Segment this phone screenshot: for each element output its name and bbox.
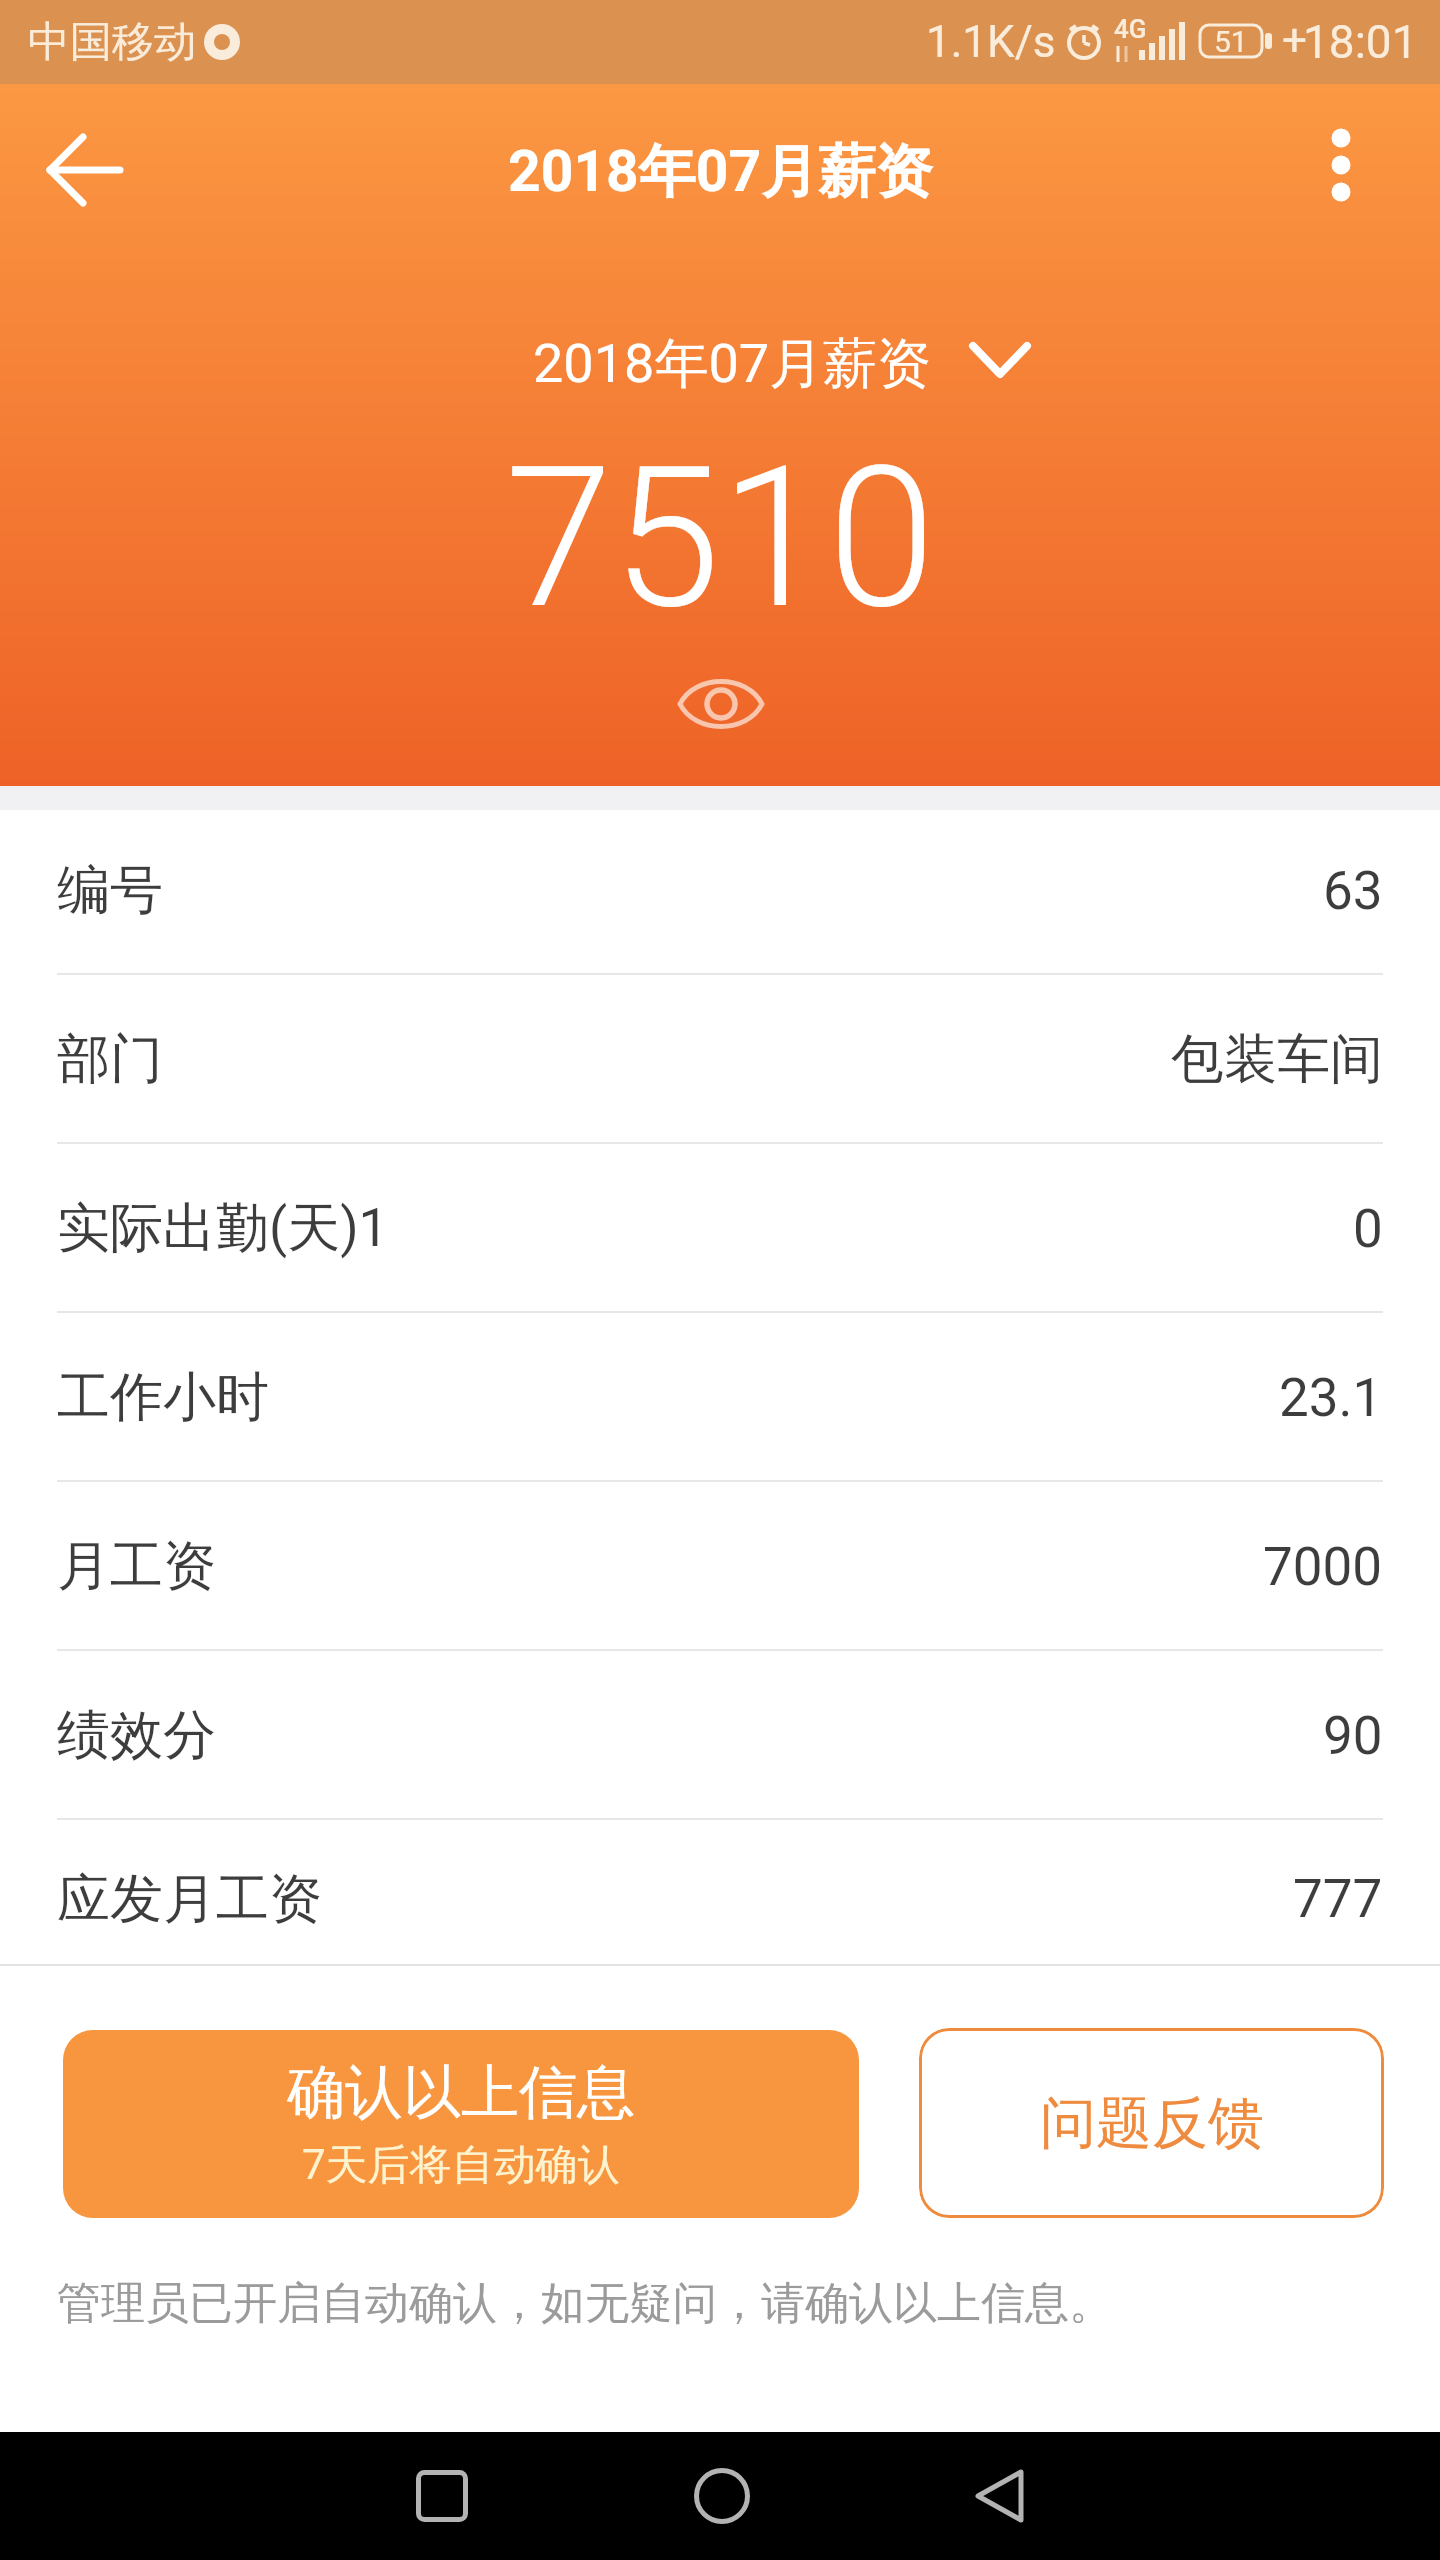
- staticText: 管理员已开启自动确认，如无疑问，请确认以上信息。: [57, 2276, 1113, 2331]
- staticText: 777: [1293, 1868, 1383, 1930]
- staticText: 工作小时: [57, 1364, 269, 1431]
- staticText: 7510: [505, 425, 936, 645]
- staticText: 部门: [57, 1026, 163, 1093]
- staticText: 应发月工资: [57, 1866, 322, 1933]
- button[interactable]: [500, 325, 1040, 401]
- staticText: 23.1: [1279, 1367, 1383, 1429]
- staticText: 7天后将自动确认: [302, 2139, 620, 2192]
- staticText: 4G: [1114, 14, 1147, 44]
- button[interactable]: [658, 2432, 786, 2560]
- staticText: 包装车间: [1171, 1026, 1383, 1093]
- button[interactable]: [20, 110, 150, 230]
- staticText: 绩效分: [57, 1702, 216, 1769]
- staticText: 90: [1323, 1705, 1383, 1767]
- staticText: +: [1282, 14, 1307, 66]
- button[interactable]: [378, 2432, 506, 2560]
- staticText: 2018年07月薪资: [533, 330, 932, 392]
- staticText: 0: [1353, 1198, 1383, 1260]
- staticText: 月工资: [57, 1533, 216, 1600]
- staticText: 63: [1323, 860, 1383, 922]
- staticText: 实际出勤(天)1: [57, 1195, 389, 1262]
- button[interactable]: 问题反馈: [919, 2028, 1384, 2218]
- staticText: 51: [1214, 24, 1248, 58]
- staticText: 中国移动: [28, 16, 196, 69]
- staticText: 1.1K/s: [926, 16, 1056, 68]
- button[interactable]: [936, 2432, 1064, 2560]
- staticText: 问题反馈: [1040, 2088, 1264, 2159]
- button[interactable]: 确认以上信息: [63, 2030, 859, 2218]
- staticText: 确认以上信息: [287, 2056, 635, 2129]
- staticText: 18:01: [1303, 15, 1418, 69]
- button[interactable]: [641, 644, 801, 764]
- staticText: 2018年07月薪资: [508, 136, 933, 208]
- button[interactable]: [1277, 105, 1405, 233]
- staticText: 编号: [57, 857, 163, 924]
- staticText: 7000: [1263, 1536, 1383, 1598]
